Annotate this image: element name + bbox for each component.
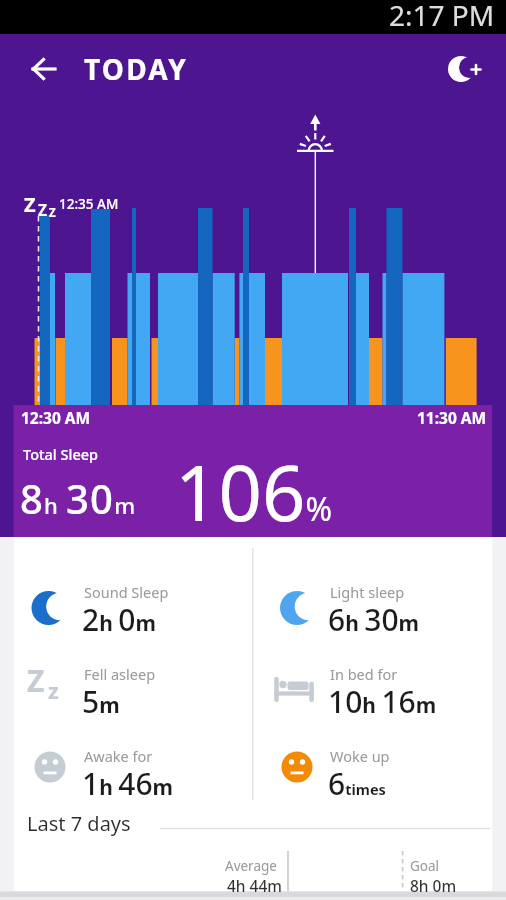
staticText: Average bbox=[225, 857, 277, 875]
button[interactable] bbox=[253, 642, 492, 724]
staticText: Total Sleep bbox=[23, 444, 99, 464]
staticText: Woke up bbox=[330, 746, 390, 766]
staticText: 8h 0m bbox=[410, 875, 457, 896]
staticText: Last 7 days bbox=[27, 810, 131, 837]
staticText: Z bbox=[49, 205, 56, 221]
staticText: 11:30 AM bbox=[417, 407, 487, 428]
staticText: Z bbox=[38, 199, 47, 220]
staticText: Light sleep bbox=[330, 582, 405, 602]
staticText: 6h 30m bbox=[328, 599, 420, 640]
staticText: TODAY bbox=[84, 50, 188, 88]
staticText: 4h 44m bbox=[227, 875, 283, 896]
button[interactable] bbox=[253, 560, 492, 642]
staticText: Z bbox=[27, 660, 45, 701]
staticText: 10h 16m bbox=[328, 681, 437, 722]
staticText: 12:35 AM bbox=[59, 195, 119, 213]
button[interactable] bbox=[14, 642, 253, 724]
button[interactable] bbox=[14, 560, 253, 642]
staticText: 1h 46m bbox=[82, 763, 174, 804]
button[interactable] bbox=[14, 405, 492, 537]
button[interactable] bbox=[442, 50, 492, 100]
button[interactable] bbox=[20, 50, 60, 90]
staticText: Sound Sleep bbox=[84, 582, 169, 602]
staticText: 2:17 PM bbox=[389, 0, 495, 34]
button[interactable] bbox=[14, 724, 253, 806]
staticText: Z bbox=[24, 191, 36, 218]
staticText: 12:30 AM bbox=[21, 407, 91, 428]
staticText: 106% bbox=[175, 440, 333, 544]
staticText: 8h 30m bbox=[20, 471, 137, 525]
button[interactable] bbox=[253, 724, 492, 806]
staticText: z bbox=[48, 675, 59, 705]
staticText: Awake for bbox=[84, 746, 153, 766]
staticText: 2h 0m bbox=[82, 599, 156, 640]
staticText: In bed for bbox=[330, 664, 398, 684]
button[interactable] bbox=[14, 806, 492, 891]
staticText: 5m bbox=[82, 681, 120, 722]
staticText: Fell asleep bbox=[84, 664, 156, 684]
staticText: Goal bbox=[410, 857, 440, 875]
staticText: 6times bbox=[328, 763, 386, 804]
